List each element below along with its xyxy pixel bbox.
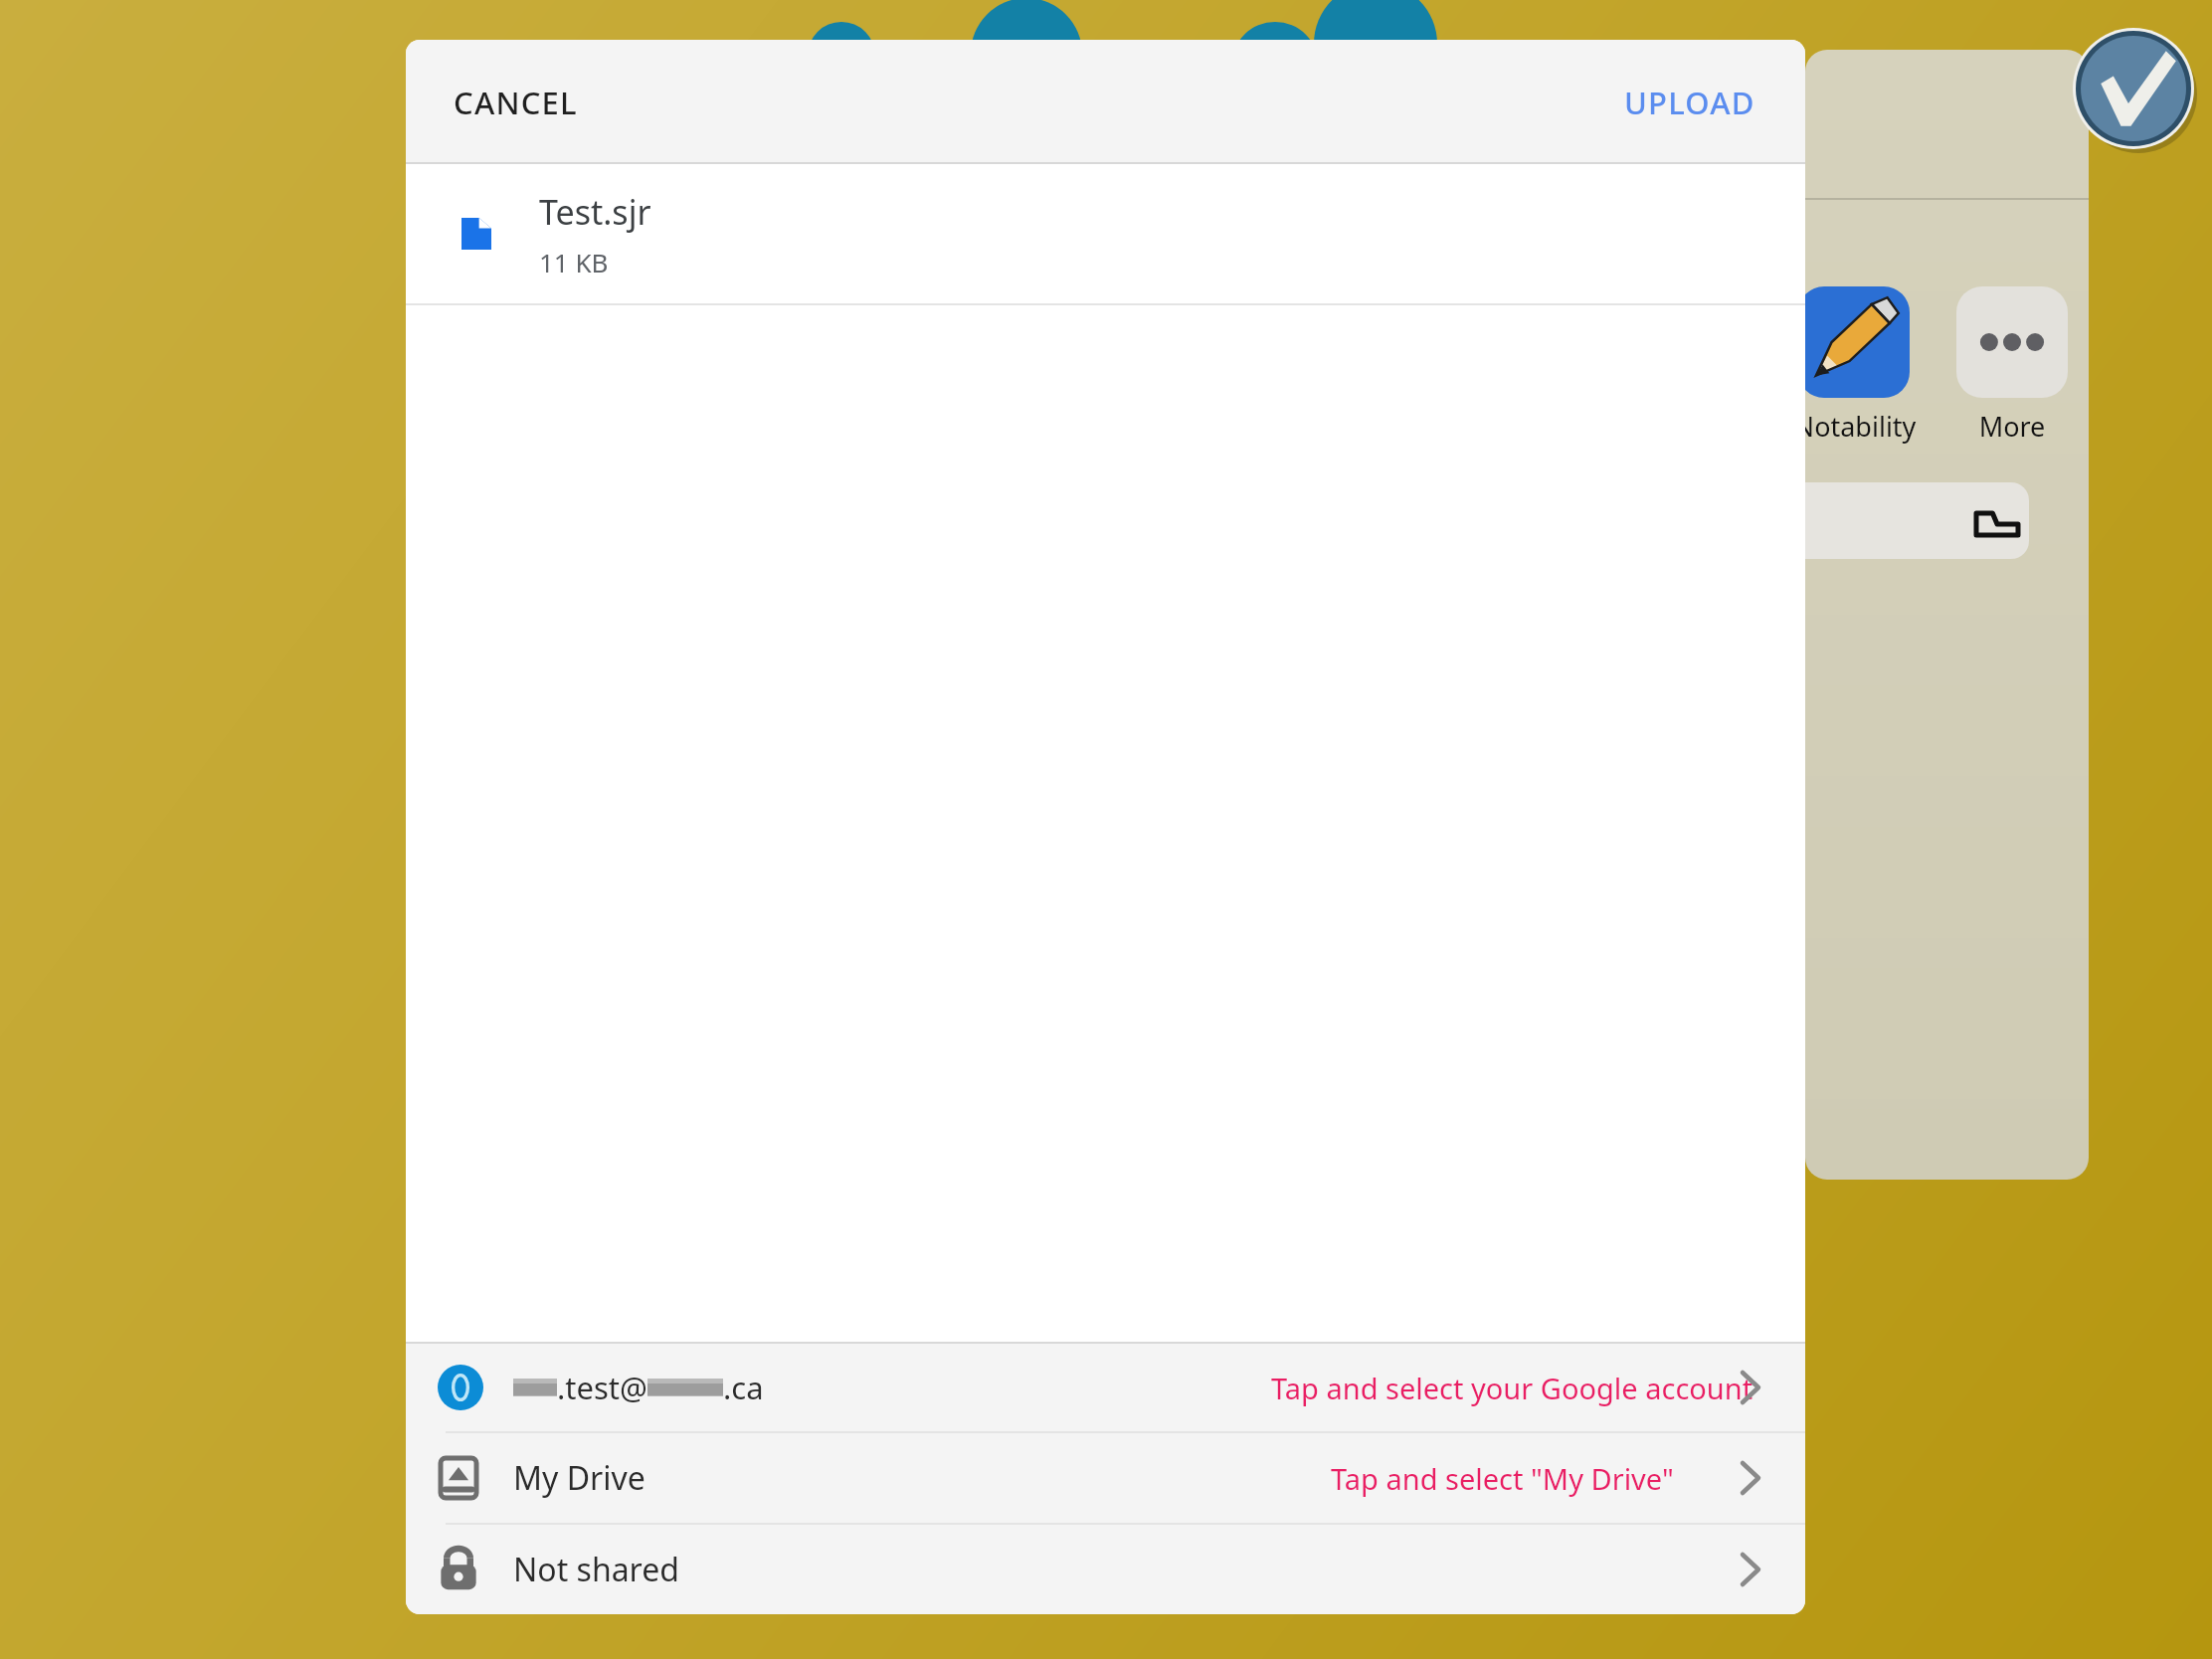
button[interactable]: Test.sjr	[406, 164, 1805, 303]
staticText: Not shared	[513, 1548, 679, 1591]
button[interactable]: Choose Google account	[406, 1344, 1805, 1431]
staticText: .test@	[557, 1367, 647, 1408]
staticText: .ca	[723, 1367, 764, 1408]
button[interactable]: CANCEL	[426, 60, 606, 145]
button[interactable]: Save to Files	[1805, 482, 2029, 559]
button[interactable]: Notability	[1805, 286, 1910, 398]
staticText: UPLOAD	[1624, 82, 1755, 123]
staticText: Notability	[1805, 408, 1925, 445]
button[interactable]: Sharing settings	[406, 1525, 1805, 1614]
staticText: Tap and select "My Drive"	[1331, 1459, 1674, 1498]
button[interactable]: More	[1956, 286, 2068, 398]
staticText: CANCEL	[454, 82, 578, 123]
button[interactable]: Choose destination folder	[406, 1433, 1805, 1523]
button[interactable]: UPLOAD	[1596, 60, 1783, 145]
staticText: Tap and select your Google account	[1271, 1369, 1753, 1407]
staticText: My Drive	[513, 1456, 645, 1500]
staticText: 11 KB	[539, 245, 609, 279]
staticText: More	[1956, 408, 2068, 445]
staticText: Test.sjr	[539, 189, 651, 235]
